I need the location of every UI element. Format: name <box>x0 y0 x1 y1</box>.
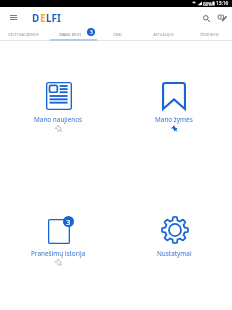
staticText: 13:16 <box>216 0 229 7</box>
staticText: ORAI <box>113 32 122 37</box>
staticText: LFI <box>46 11 61 25</box>
button[interactable]: Send feedback <box>214 10 230 26</box>
staticText: 3 <box>90 29 93 36</box>
button[interactable]: Search <box>198 10 214 26</box>
staticText: Mano naujienos <box>34 115 83 124</box>
staticText: Nustatymai <box>157 249 192 258</box>
staticText: 3 <box>66 217 71 227</box>
button[interactable]: 3 <box>0 175 116 310</box>
button[interactable]: ORAI <box>94 28 140 41</box>
staticText: Mano žymės <box>155 115 193 124</box>
staticText: 68% <box>203 1 212 7</box>
staticText: Pranešimų istorija <box>31 249 86 258</box>
staticText: MANO DELFI <box>59 32 82 37</box>
button[interactable]: Mano žymės <box>116 41 232 175</box>
button[interactable]: Open navigation menu <box>4 9 22 27</box>
staticText: E <box>40 11 46 25</box>
button[interactable]: IŠSIDINYJE <box>186 28 232 41</box>
staticText: D <box>32 11 40 25</box>
button[interactable]: Nustatymai <box>116 175 232 310</box>
button[interactable]: Mano naujienos <box>0 41 116 175</box>
button[interactable]: MANO DELFI <box>47 28 94 41</box>
staticText: DELFI NAUJIENOS <box>8 32 39 37</box>
button[interactable]: DELFI NAUJIENOS <box>0 28 47 41</box>
staticText: AKTUALIJOS <box>153 32 174 37</box>
button[interactable]: AKTUALIJOS <box>140 28 186 41</box>
staticText: IŠSIDINYJE <box>200 32 219 37</box>
